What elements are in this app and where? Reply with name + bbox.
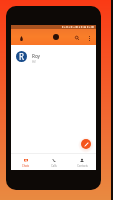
staticText: Roy — [32, 53, 41, 59]
button[interactable]: R — [11, 45, 96, 65]
staticText: Contacts — [77, 164, 88, 168]
staticText: Calls — [51, 164, 57, 168]
staticText: Chats — [22, 164, 29, 168]
button[interactable]: Calls — [40, 154, 68, 170]
button[interactable]: More options — [84, 33, 94, 43]
button[interactable]: New message — [81, 139, 91, 149]
staticText: Hi! — [32, 60, 37, 64]
button[interactable]: Contacts — [68, 154, 96, 170]
staticText: R — [19, 51, 24, 62]
button[interactable]: Chats — [11, 154, 40, 170]
button[interactable]: Account — [53, 34, 59, 40]
button[interactable]: Search — [72, 33, 82, 43]
